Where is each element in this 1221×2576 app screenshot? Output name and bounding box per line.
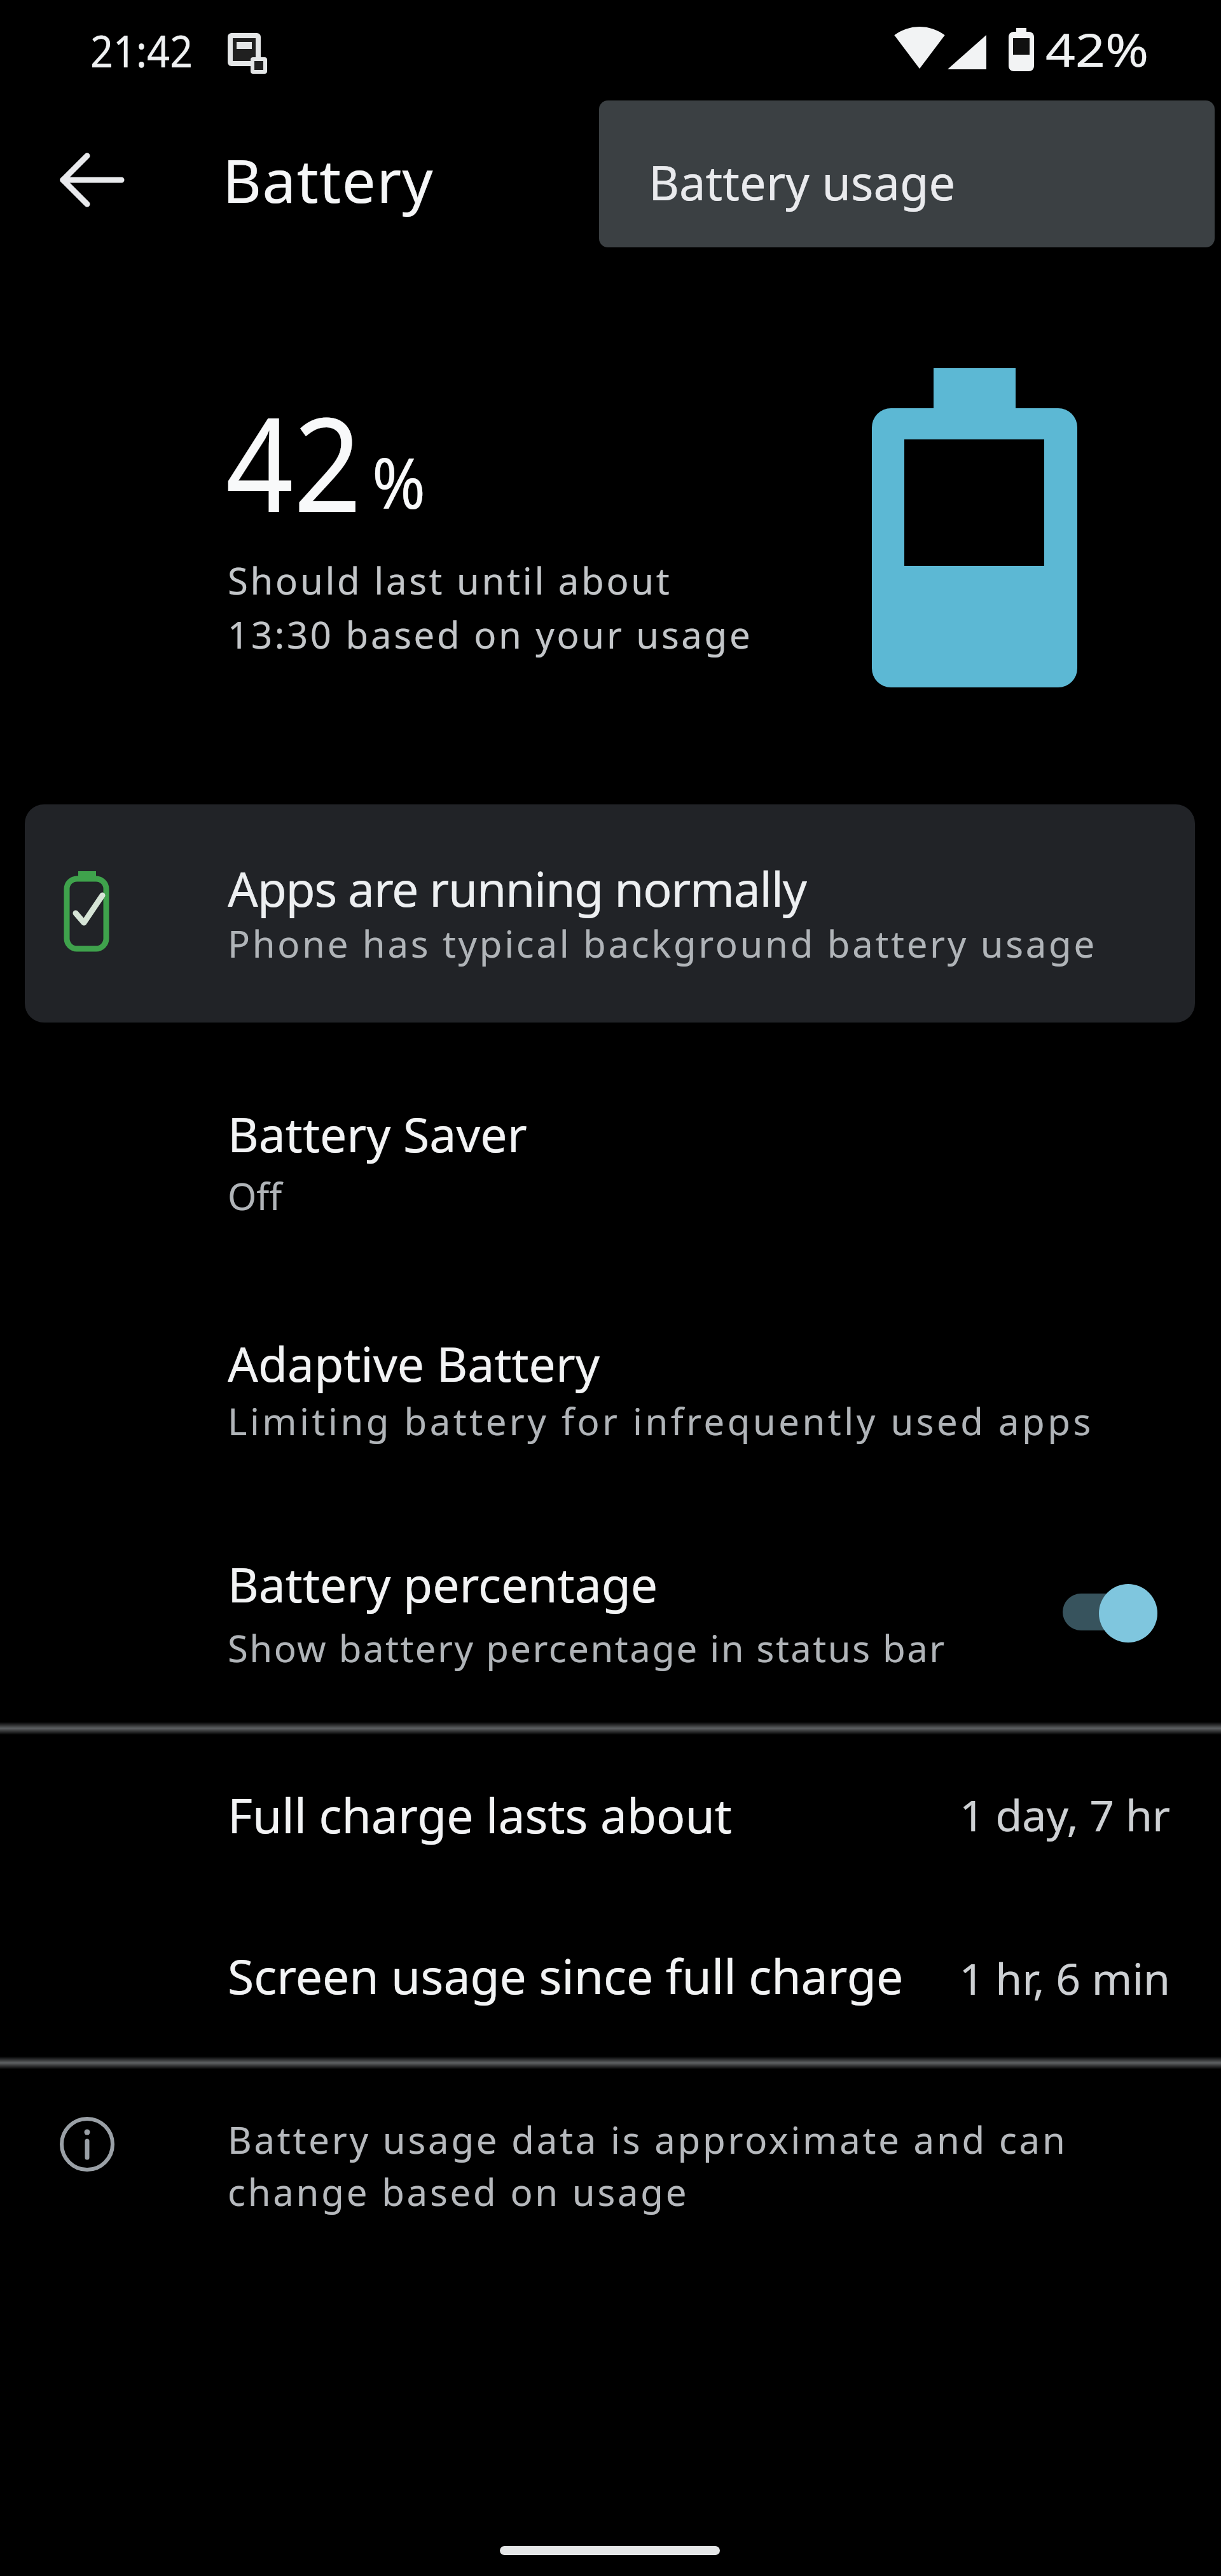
staticText: Show battery percentage in status bar <box>228 1623 946 1673</box>
staticText: Screen usage since full charge <box>228 1943 904 2008</box>
staticText: 1 day, 7 hr <box>0 1785 1170 1844</box>
staticText: Off <box>228 1171 282 1221</box>
staticText: Battery <box>223 139 434 221</box>
staticText: Phone has typical background battery usa… <box>228 918 1097 968</box>
staticText: Should last until about 13:30 based on y… <box>228 555 753 659</box>
staticText: Limiting battery for infrequently used a… <box>228 1396 1094 1446</box>
staticText: Battery usage data is approximate and ca… <box>228 2114 1068 2217</box>
staticText: 1 hr, 6 min <box>0 1948 1170 2008</box>
staticText: Battery usage <box>649 150 956 214</box>
staticText: Adaptive Battery <box>228 1331 600 1396</box>
staticText: Battery Saver <box>228 1101 527 1166</box>
staticText: Apps are running normally <box>228 856 806 921</box>
staticText: Full charge lasts about <box>228 1782 732 1847</box>
staticText: 42% <box>1045 18 1149 80</box>
staticText: 42 <box>226 373 362 550</box>
staticText: % <box>372 434 426 529</box>
staticText: 21:42 <box>90 20 193 80</box>
staticText: Battery percentage <box>228 1552 658 1616</box>
